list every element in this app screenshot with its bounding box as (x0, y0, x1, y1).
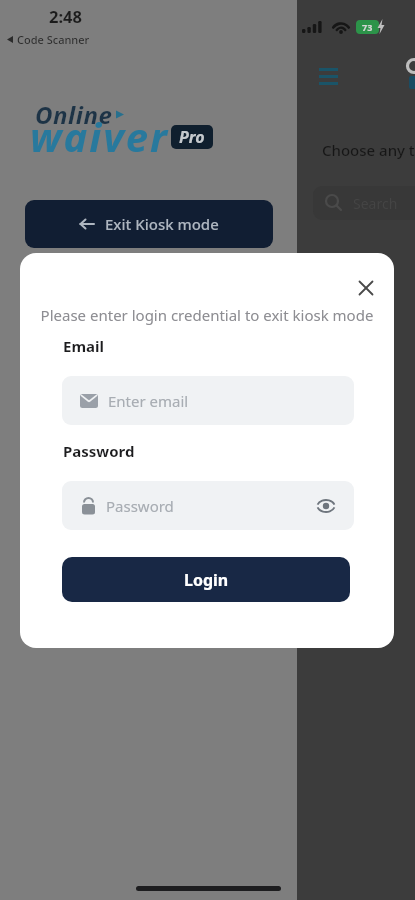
button[interactable] (319, 68, 338, 85)
staticText: Email (63, 336, 104, 356)
staticText: Password (63, 441, 135, 461)
staticText: Pro (179, 126, 205, 148)
staticText: 73 (362, 21, 373, 33)
button[interactable] (352, 274, 380, 302)
staticText: Please enter login credential to exit ki… (20, 305, 394, 325)
staticText: Login (184, 569, 229, 591)
staticText: Code Scanner (17, 32, 90, 47)
button[interactable]: Enter email (62, 376, 354, 425)
staticText: Search (353, 194, 398, 213)
staticText: Password (106, 496, 174, 516)
button[interactable]: Password (62, 481, 354, 530)
staticText: waiver (30, 109, 169, 163)
staticText: 2:48 (49, 5, 82, 27)
button[interactable]: Exit Kiosk mode (25, 200, 273, 248)
staticText: Enter email (108, 391, 189, 411)
staticText: Exit Kiosk mode (105, 214, 219, 234)
button[interactable]: Code Scanner (6, 32, 90, 47)
button[interactable]: Search (313, 186, 415, 220)
button[interactable]: Login (62, 557, 350, 602)
staticText: Choose any te (322, 140, 415, 160)
staticText: Online (35, 98, 113, 131)
